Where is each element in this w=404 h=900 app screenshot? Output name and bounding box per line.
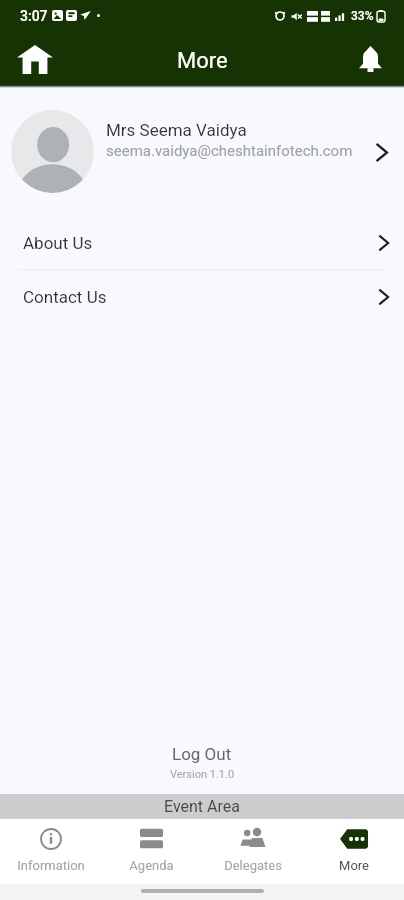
staticText: Information	[17, 858, 85, 873]
button[interactable]: Notifications	[348, 37, 392, 81]
button[interactable]: More	[303, 819, 404, 884]
staticText: More	[177, 48, 228, 74]
staticText: More	[339, 858, 369, 873]
button[interactable]: Home	[13, 37, 57, 81]
staticText: Delegates	[224, 858, 282, 873]
button[interactable]: Mrs Seema Vaidya	[0, 88, 404, 216]
button[interactable]: Contact Us	[0, 270, 404, 323]
button[interactable]: Information	[0, 819, 101, 884]
staticText: Agenda	[129, 858, 174, 873]
staticText: Version 1.1.0	[170, 768, 235, 781]
button[interactable]: Delegates	[202, 819, 303, 884]
staticText: About Us	[23, 233, 93, 253]
staticText: seema.vaidya@cheshtainfotech.com	[106, 142, 353, 160]
staticText: 3:07	[20, 8, 48, 24]
staticText: Mrs Seema Vaidya	[106, 120, 247, 140]
staticText: Contact Us	[23, 287, 107, 307]
staticText: Log Out	[172, 744, 232, 764]
staticText: Event Area	[164, 797, 240, 816]
button[interactable]: Agenda	[101, 819, 202, 884]
button[interactable]: About Us	[0, 216, 404, 269]
button[interactable]: Event Area	[0, 794, 404, 819]
staticText: 33%	[351, 9, 374, 23]
button[interactable]: Log Out	[0, 744, 404, 781]
